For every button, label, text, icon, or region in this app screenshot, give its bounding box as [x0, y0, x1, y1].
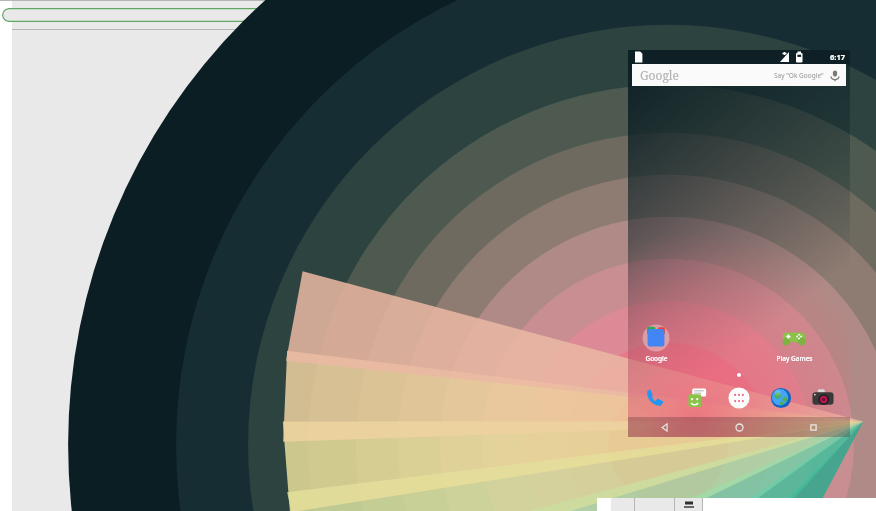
- button[interactable]: [635, 498, 675, 511]
- button[interactable]: Home: [702, 417, 776, 437]
- button[interactable]: Layout: [675, 498, 703, 511]
- button[interactable]: Google: [632, 64, 846, 86]
- staticText: Google: [645, 354, 668, 363]
- button[interactable]: Camera: [802, 383, 844, 413]
- staticText: Google: [640, 67, 680, 83]
- button[interactable]: Google: [636, 324, 676, 363]
- button[interactable]: Browser: [760, 383, 802, 413]
- staticText: Play Games: [776, 354, 813, 363]
- button[interactable]: Recents: [776, 417, 850, 437]
- button[interactable]: Messages: [676, 383, 718, 413]
- button[interactable]: Play Games: [767, 324, 821, 363]
- button[interactable]: Voice search: [828, 68, 842, 82]
- staticText: 6:17: [830, 52, 845, 62]
- button[interactable]: Phone: [634, 383, 676, 413]
- button[interactable]: Apps: [718, 383, 760, 413]
- button[interactable]: Back: [628, 417, 702, 437]
- staticText: Say "Ok Google": [774, 71, 824, 80]
- button[interactable]: [2, 8, 437, 22]
- button[interactable]: [611, 498, 635, 511]
